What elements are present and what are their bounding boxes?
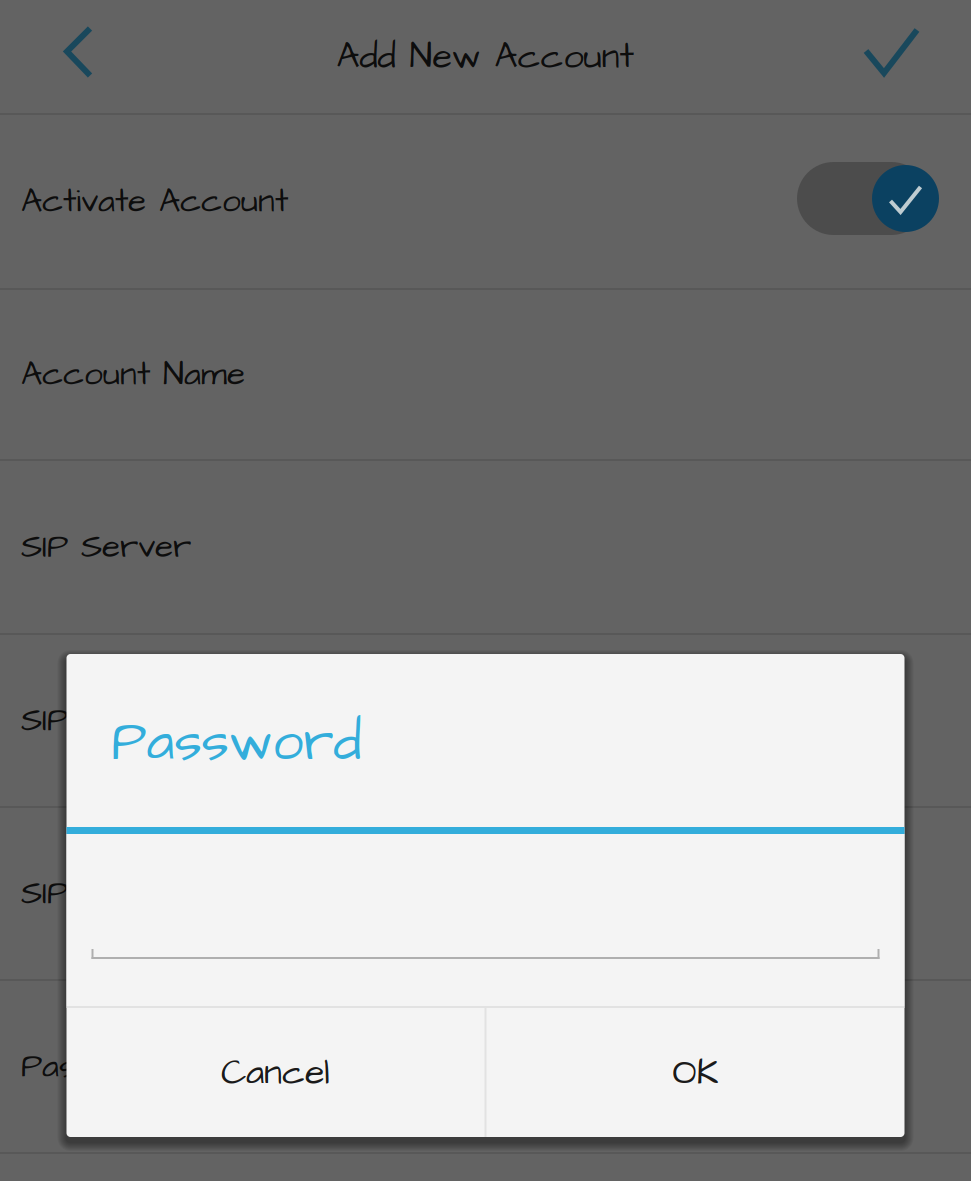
staticText: Password (111, 705, 361, 781)
staticText: Activate Account (21, 178, 288, 225)
staticText: SIP User (21, 697, 153, 744)
button[interactable]: Account Name (0, 290, 971, 459)
button[interactable]: Password (0, 981, 971, 1152)
button[interactable]: SIP Auth ID (0, 808, 971, 979)
button[interactable]: Activate Account (0, 115, 971, 288)
staticText: Account Name (21, 351, 245, 398)
staticText: SIP Auth ID (21, 870, 189, 917)
staticText: Password (21, 1043, 174, 1090)
button[interactable]: Save (814, 0, 971, 113)
button[interactable]: Cancel (66, 1008, 484, 1137)
button[interactable]: OK (486, 1008, 904, 1137)
staticText: Add New Account (336, 31, 634, 81)
staticText: SIP Server (21, 524, 191, 570)
button[interactable]: SIP User (0, 635, 971, 806)
staticText: OK (672, 1047, 718, 1097)
button[interactable]: SIP Server (0, 461, 971, 633)
staticText: Cancel (221, 1047, 330, 1097)
button[interactable]: Back (0, 0, 157, 113)
